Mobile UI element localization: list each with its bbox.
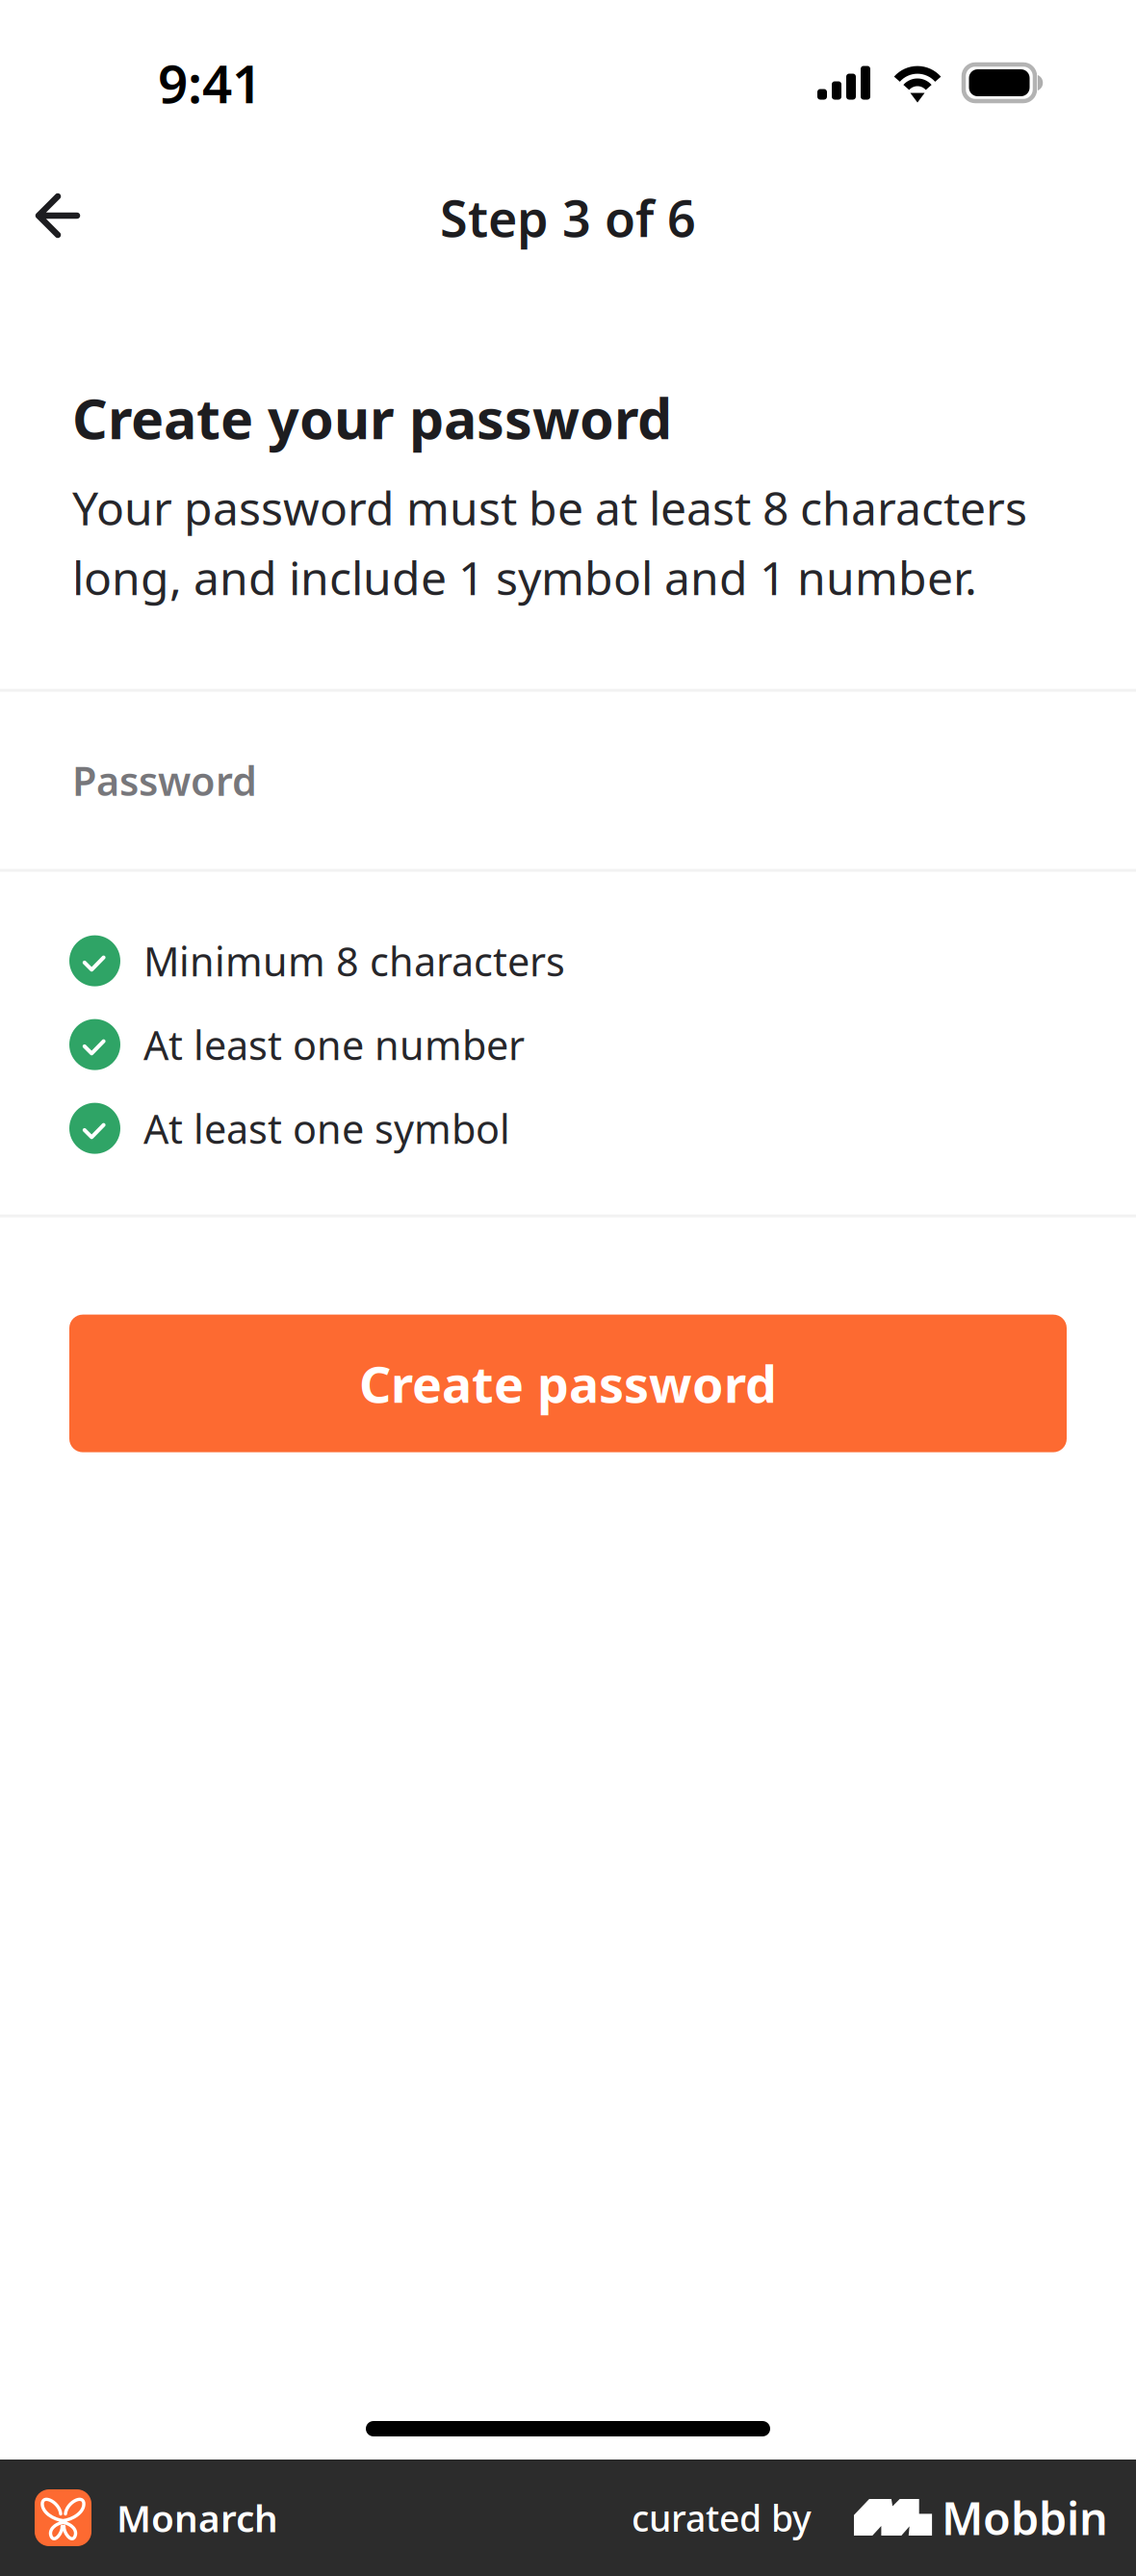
staticText: At least one symbol	[143, 1102, 510, 1155]
staticText: Mobbin	[942, 2488, 1108, 2548]
staticText: At least one number	[143, 1018, 525, 1071]
staticText: Create your password	[72, 381, 672, 454]
staticText: Your password must be at least 8 charact…	[72, 477, 1027, 608]
staticText: Create password	[359, 1350, 777, 1417]
staticText: Minimum 8 characters	[143, 934, 565, 987]
staticText: Password	[72, 754, 257, 807]
button[interactable]: Back	[12, 169, 104, 262]
staticText: Step 3 of 6	[440, 184, 696, 251]
button[interactable]: Password	[0, 692, 1136, 869]
button[interactable]: Create password	[69, 1315, 1067, 1452]
staticText: 9:41	[158, 48, 262, 118]
staticText: curated by	[632, 2494, 812, 2542]
staticText: Monarch	[116, 2493, 278, 2542]
